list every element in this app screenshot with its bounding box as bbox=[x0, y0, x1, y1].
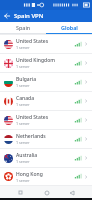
button[interactable]: Open Netherlands bbox=[83, 136, 89, 142]
staticText: 1 server bbox=[16, 140, 30, 145]
button[interactable]: Back bbox=[2, 11, 12, 21]
button[interactable]: Global bbox=[46, 22, 92, 33]
staticText: Australia bbox=[16, 152, 38, 159]
button[interactable]: Open United States bbox=[83, 117, 89, 123]
staticText: Canada bbox=[16, 95, 34, 102]
staticText: Netherlands bbox=[16, 133, 46, 140]
button[interactable]: Home bbox=[42, 188, 51, 197]
button[interactable]: United States bbox=[0, 111, 92, 129]
button[interactable]: Australia bbox=[0, 149, 92, 167]
button[interactable]: United Kingdom bbox=[0, 54, 92, 72]
staticText: United States bbox=[16, 114, 49, 121]
staticText: Bulgaria bbox=[16, 76, 37, 83]
button[interactable]: Back bbox=[67, 188, 76, 197]
staticText: 1 server bbox=[16, 64, 30, 69]
button[interactable]: Open Australia bbox=[83, 155, 89, 161]
button[interactable]: United States bbox=[0, 35, 92, 53]
button[interactable]: Open United States bbox=[83, 41, 89, 47]
button[interactable]: Open United Kingdom bbox=[83, 60, 89, 66]
staticText: 1 server bbox=[16, 159, 30, 164]
staticText: 1 server bbox=[16, 102, 30, 107]
staticText: United States bbox=[16, 38, 49, 45]
staticText: Global bbox=[61, 24, 78, 31]
button[interactable]: Netherlands bbox=[0, 130, 92, 148]
staticText: Hong Kong bbox=[16, 171, 43, 178]
button[interactable]: Bulgaria bbox=[0, 73, 92, 91]
staticText: 1 server bbox=[16, 121, 30, 126]
button[interactable]: Open Hong Kong bbox=[83, 174, 89, 180]
staticText: 1 server bbox=[16, 83, 30, 88]
button[interactable]: Hong Kong bbox=[0, 168, 92, 185]
staticText: United Kingdom bbox=[16, 57, 55, 64]
staticText: Spain bbox=[16, 24, 31, 31]
button[interactable]: Spain bbox=[0, 22, 46, 33]
staticText: 1 server bbox=[16, 45, 30, 50]
button[interactable]: Recents bbox=[16, 188, 25, 197]
button[interactable]: Open Bulgaria bbox=[83, 79, 89, 85]
button[interactable]: Canada bbox=[0, 92, 92, 110]
button[interactable]: Open Canada bbox=[83, 98, 89, 104]
staticText: 1 server bbox=[16, 178, 30, 183]
staticText: Spain VPN bbox=[14, 12, 44, 20]
